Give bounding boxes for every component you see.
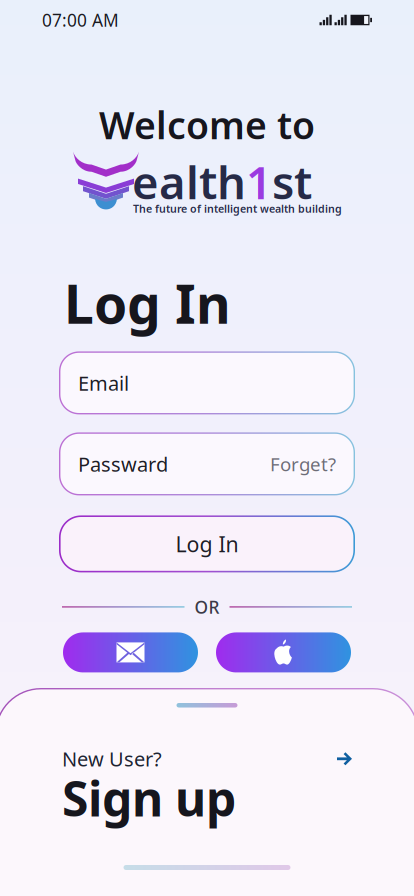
staticText: 1 bbox=[246, 152, 272, 212]
button[interactable]: Continue with email bbox=[63, 632, 198, 672]
staticText: Welcome to bbox=[99, 100, 315, 150]
staticText: ealth bbox=[132, 152, 246, 212]
staticText: Passward bbox=[78, 451, 168, 477]
staticText: Log In bbox=[175, 530, 238, 558]
staticText: New User? bbox=[62, 745, 162, 772]
button[interactable]: Log In bbox=[59, 515, 355, 572]
staticText: Forget? bbox=[270, 451, 336, 476]
staticText: OR bbox=[194, 595, 219, 618]
button[interactable]: Continue with Apple bbox=[216, 632, 351, 672]
button[interactable]: New User? bbox=[0, 745, 414, 830]
staticText: Email bbox=[78, 370, 129, 396]
staticText: Log In bbox=[64, 268, 231, 338]
staticText: 07:00 AM bbox=[42, 8, 119, 31]
staticText: st bbox=[272, 152, 312, 212]
staticText: Sign up bbox=[62, 766, 236, 830]
staticText: The future of intelligent wealth buildin… bbox=[133, 202, 342, 216]
